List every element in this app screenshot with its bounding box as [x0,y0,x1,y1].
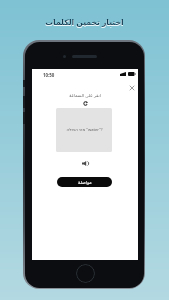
staticText: اختبار تخمين الكلمات [45,17,124,27]
button[interactable]: Refresh [78,96,93,111]
button[interactable]: Close [125,81,138,94]
staticText: اختبار تخمين الكلمات [45,18,124,28]
button[interactable]: مواصلة [57,177,112,187]
staticText: انقر على السماعة [69,92,101,98]
staticText: مواصلة [78,180,92,185]
staticText: 10:50 [43,72,55,78]
button[interactable]: Play sound [78,156,92,170]
staticText: מהי המילה "water"? [66,127,103,133]
